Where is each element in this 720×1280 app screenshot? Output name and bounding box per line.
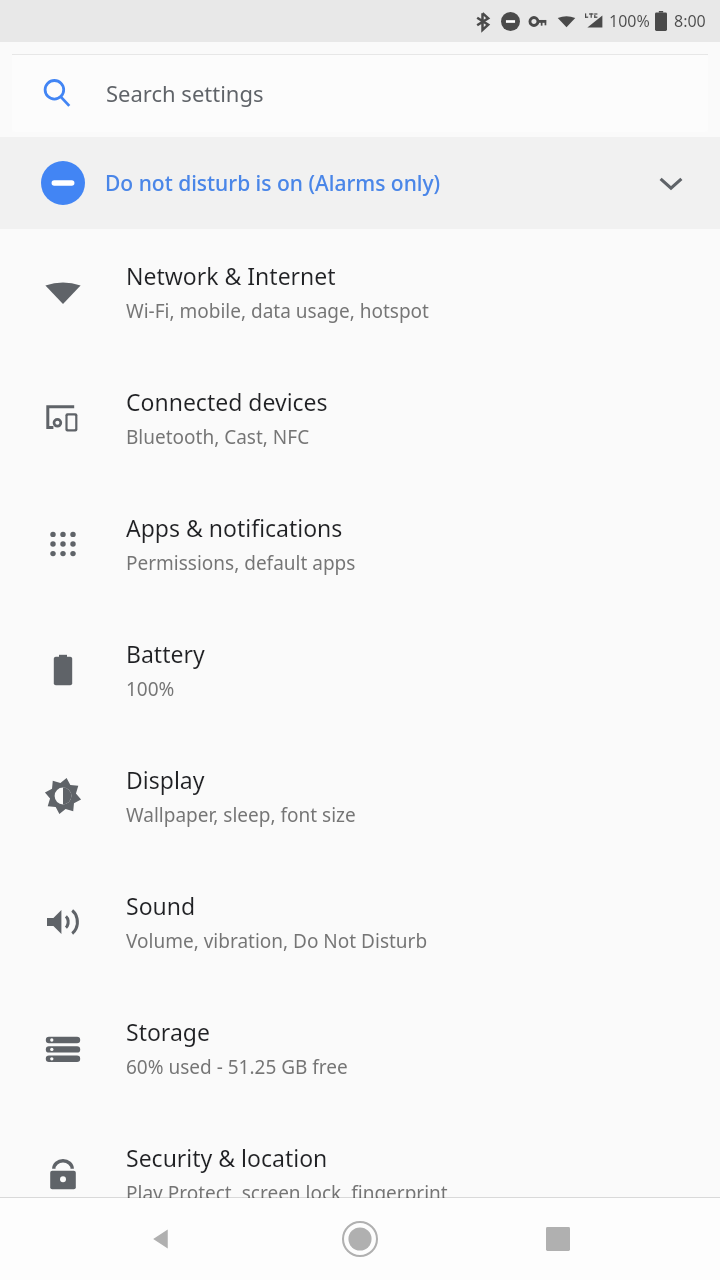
- button[interactable]: Security & location: [0, 1111, 720, 1237]
- staticText: Bluetooth, Cast, NFC: [126, 424, 310, 450]
- button[interactable]: Storage: [0, 985, 720, 1111]
- staticText: Display: [126, 764, 205, 795]
- button[interactable]: Connected devices: [0, 355, 720, 481]
- staticText: Storage: [126, 1016, 210, 1047]
- staticText: Permissions, default apps: [126, 550, 356, 576]
- other: Expand: [658, 170, 684, 196]
- staticText: 100%: [126, 676, 175, 702]
- staticText: Network & Internet: [126, 260, 336, 291]
- button[interactable]: Search settings: [12, 54, 708, 132]
- staticText: Apps & notifications: [126, 512, 343, 543]
- staticText: Search settings: [106, 78, 264, 108]
- staticText: Play Protect, screen lock, fingerprint: [126, 1180, 448, 1206]
- staticText: 100%: [609, 10, 650, 32]
- button[interactable]: Home: [324, 1203, 396, 1275]
- staticText: Volume, vibration, Do Not Disturb: [126, 928, 428, 954]
- staticText: Battery: [126, 638, 205, 669]
- staticText: Connected devices: [126, 386, 328, 417]
- button[interactable]: Do not disturb is on (Alarms only): [0, 137, 720, 229]
- button[interactable]: Battery: [0, 607, 720, 733]
- button[interactable]: Apps & notifications: [0, 481, 720, 607]
- staticText: Do not disturb is on (Alarms only): [105, 169, 441, 198]
- button[interactable]: Network & Internet: [0, 229, 720, 355]
- button[interactable]: Back: [126, 1203, 198, 1275]
- button[interactable]: Display: [0, 733, 720, 859]
- staticText: Sound: [126, 890, 196, 921]
- button[interactable]: Sound: [0, 859, 720, 985]
- staticText: 60% used - 51.25 GB free: [126, 1054, 348, 1080]
- button[interactable]: Recent apps: [522, 1203, 594, 1275]
- staticText: Security & location: [126, 1142, 328, 1173]
- staticText: 8:00: [674, 10, 706, 32]
- staticText: Wi-Fi, mobile, data usage, hotspot: [126, 298, 429, 324]
- staticText: Wallpaper, sleep, font size: [126, 802, 356, 828]
